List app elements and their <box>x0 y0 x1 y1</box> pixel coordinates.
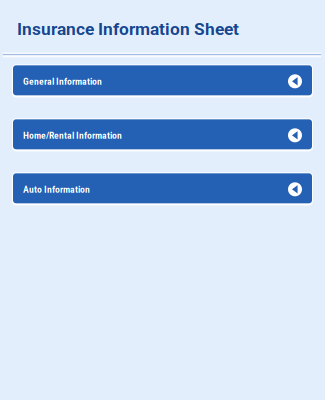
staticText: Auto Information <box>23 184 90 195</box>
staticText: Insurance Information Sheet <box>17 19 239 39</box>
button[interactable]: Auto Information <box>12 172 313 205</box>
staticText: General Information <box>23 76 102 87</box>
button[interactable]: Home/Rental Information <box>12 118 313 151</box>
button[interactable]: General Information <box>12 64 313 97</box>
staticText: Home/Rental Information <box>23 130 122 141</box>
